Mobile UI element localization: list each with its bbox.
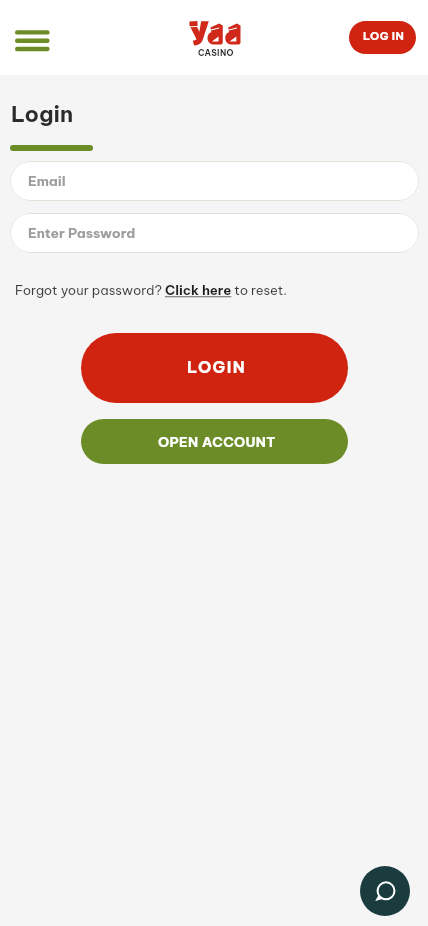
- button[interactable]: Enter Password: [10, 213, 419, 253]
- button[interactable]: Open chat: [360, 866, 410, 916]
- button[interactable]: Email: [10, 161, 419, 201]
- staticText: Enter Password: [28, 224, 136, 241]
- staticText: LOG IN: [363, 29, 405, 43]
- staticText: Forgot your password? Click here to rese…: [15, 282, 288, 299]
- button[interactable]: LOGIN: [81, 333, 348, 403]
- staticText: OPEN ACCOUNT: [158, 433, 276, 450]
- staticText: Email: [28, 172, 66, 189]
- staticText: Login: [11, 100, 74, 128]
- button[interactable]: LOG IN: [349, 21, 416, 54]
- staticText: CASINO: [198, 48, 234, 59]
- button[interactable]: OPEN ACCOUNT: [81, 419, 348, 464]
- button[interactable]: Open menu: [7, 22, 57, 59]
- staticText: LOGIN: [187, 357, 247, 377]
